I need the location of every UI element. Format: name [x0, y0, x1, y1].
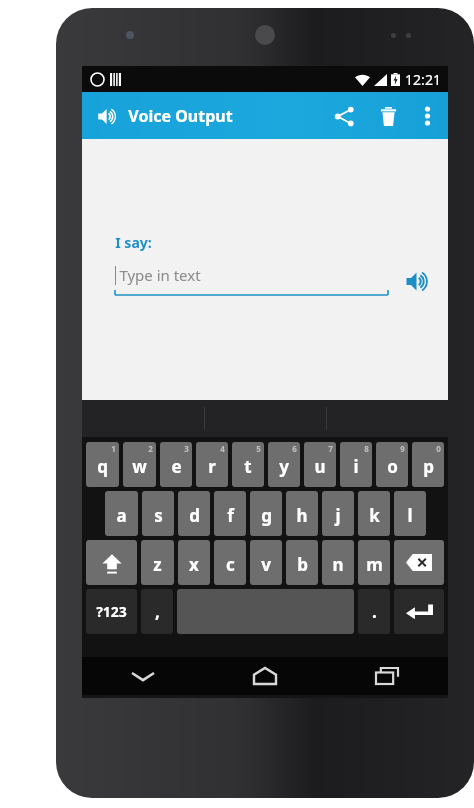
button[interactable]: 2: [123, 442, 156, 487]
staticText: 5: [256, 443, 261, 454]
staticText: 3: [184, 443, 189, 454]
staticText: o: [387, 455, 398, 478]
staticText: w: [132, 455, 147, 478]
button[interactable]: v: [250, 540, 282, 585]
button[interactable]: Back: [82, 657, 204, 695]
button[interactable]: 5: [232, 442, 264, 487]
button[interactable]: n: [322, 540, 354, 585]
staticText: .: [372, 600, 377, 623]
staticText: g: [261, 504, 272, 527]
button[interactable]: Key: [141, 589, 173, 634]
staticText: j: [335, 504, 341, 527]
button[interactable]: a: [105, 491, 138, 536]
staticText: Type in text: [119, 265, 201, 285]
button[interactable]: z: [141, 540, 174, 585]
staticText: 2: [148, 443, 153, 454]
staticText: b: [297, 553, 308, 576]
staticText: a: [116, 504, 127, 527]
staticText: r: [208, 455, 216, 478]
button[interactable]: Recent apps: [326, 657, 448, 695]
button[interactable]: c: [214, 540, 246, 585]
staticText: x: [189, 553, 199, 576]
staticText: i: [353, 455, 359, 478]
button[interactable]: Delete: [366, 94, 410, 138]
staticText: I say:: [115, 233, 152, 252]
staticText: 1: [111, 443, 116, 454]
button[interactable]: 9: [376, 442, 408, 487]
button[interactable]: Type in text: [115, 265, 388, 297]
button[interactable]: 1: [86, 442, 119, 487]
staticText: l: [407, 504, 413, 527]
staticText: t: [244, 455, 252, 478]
staticText: f: [227, 504, 234, 527]
staticText: 6: [292, 443, 297, 454]
staticText: 4: [220, 443, 225, 454]
staticText: k: [369, 504, 380, 527]
button[interactable]: 7: [304, 442, 336, 487]
button[interactable]: g: [250, 491, 282, 536]
button[interactable]: Key: [394, 540, 444, 585]
staticText: d: [189, 504, 200, 527]
staticText: 8: [364, 443, 369, 454]
button[interactable]: Key: [394, 589, 444, 634]
button[interactable]: j: [322, 491, 354, 536]
staticText: ?123: [96, 602, 127, 621]
staticText: h: [296, 504, 308, 527]
staticText: 9: [400, 443, 405, 454]
staticText: c: [226, 553, 235, 576]
staticText: m: [366, 553, 383, 576]
button[interactable]: d: [178, 491, 210, 536]
button[interactable]: Home: [204, 657, 326, 695]
button[interactable]: b: [286, 540, 318, 585]
button[interactable]: m: [358, 540, 390, 585]
staticText: 7: [328, 443, 333, 454]
button[interactable]: x: [178, 540, 210, 585]
button[interactable]: 0: [412, 442, 444, 487]
button[interactable]: 8: [340, 442, 372, 487]
button[interactable]: h: [286, 491, 318, 536]
button[interactable]: 4: [196, 442, 228, 487]
button[interactable]: Share: [322, 94, 366, 138]
button[interactable]: More options: [410, 99, 444, 133]
staticText: y: [279, 455, 289, 478]
button[interactable]: Key: [86, 589, 137, 634]
button[interactable]: 3: [160, 442, 192, 487]
staticText: Voice Output: [128, 105, 233, 127]
staticText: z: [153, 553, 162, 576]
button[interactable]: k: [358, 491, 390, 536]
button[interactable]: Key: [86, 540, 137, 585]
staticText: p: [423, 455, 434, 478]
staticText: e: [171, 455, 182, 478]
staticText: q: [97, 455, 108, 478]
button[interactable]: f: [214, 491, 246, 536]
button[interactable]: s: [142, 491, 174, 536]
button[interactable]: App icon: [92, 101, 122, 131]
staticText: u: [314, 455, 326, 478]
staticText: s: [154, 504, 163, 527]
button[interactable]: l: [394, 491, 426, 536]
button[interactable]: Speak: [398, 262, 436, 300]
button[interactable]: Key: [358, 589, 390, 634]
staticText: ,: [155, 600, 160, 623]
staticText: v: [261, 553, 271, 576]
staticText: 12:21: [405, 70, 441, 89]
staticText: n: [332, 553, 344, 576]
staticText: 0: [436, 443, 441, 454]
button[interactable]: 6: [268, 442, 300, 487]
